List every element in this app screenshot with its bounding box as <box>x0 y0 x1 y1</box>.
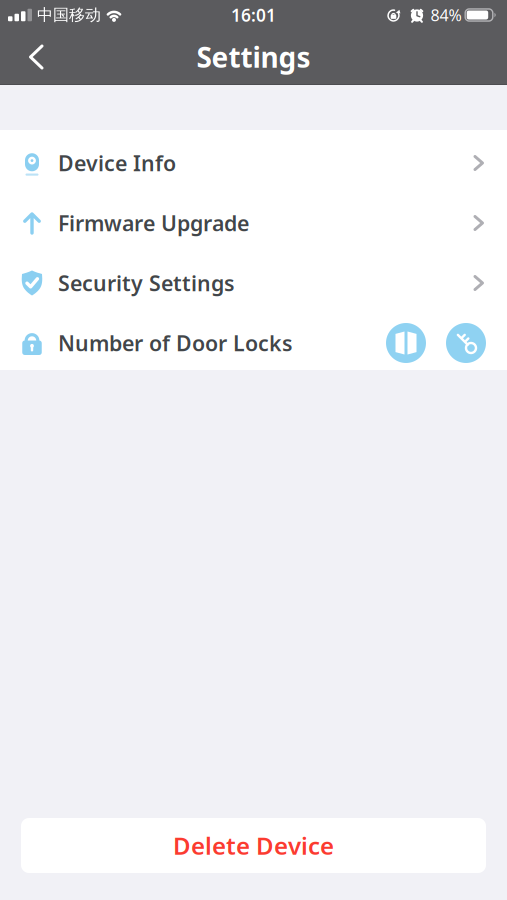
staticText: Device Info <box>58 149 176 177</box>
button[interactable]: Number of Door Locks <box>0 310 507 370</box>
staticText: 16:01 <box>231 3 276 26</box>
button[interactable]: Two door locks <box>446 323 486 363</box>
button[interactable]: One door lock <box>386 323 426 363</box>
button[interactable]: Back <box>0 29 64 84</box>
staticText: Firmware Upgrade <box>58 209 249 237</box>
button[interactable]: Delete Device <box>21 818 486 873</box>
button[interactable]: Device Info <box>0 130 507 190</box>
staticText: 84% <box>430 4 461 26</box>
staticText: 中国移动 <box>37 5 101 25</box>
button[interactable]: Firmware Upgrade <box>0 190 507 250</box>
staticText: Settings <box>196 38 310 76</box>
staticText: Delete Device <box>173 830 334 861</box>
button[interactable]: Security Settings <box>0 250 507 310</box>
staticText: Security Settings <box>58 269 235 297</box>
staticText: Number of Door Locks <box>58 329 293 357</box>
